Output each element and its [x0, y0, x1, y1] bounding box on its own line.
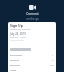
staticText: Connect [26, 12, 39, 16]
staticText: Duration [10, 59, 20, 62]
staticText: Create an account [10, 27, 31, 30]
staticText: Notes [10, 69, 17, 72]
staticText: on the go [26, 17, 39, 21]
staticText: 10 m [49, 64, 54, 67]
button[interactable]: Reminder [10, 63, 54, 68]
staticText: Participants [10, 54, 23, 57]
staticText: 1 h [51, 59, 54, 62]
other: Video call [29, 5, 36, 10]
staticText: 4 [52, 54, 54, 57]
button[interactable]: Notes [10, 68, 54, 72]
staticText: 9:00 AM - 10:00 [10, 36, 26, 39]
staticText: Reminder [10, 64, 21, 67]
staticText: July 24, 2019 [10, 32, 26, 36]
staticText: Sign Up [10, 23, 23, 28]
button[interactable]: Duration [10, 58, 54, 63]
staticText: Meeting room [10, 39, 24, 42]
button[interactable]: Participants [10, 53, 54, 58]
